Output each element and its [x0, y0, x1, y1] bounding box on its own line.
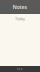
staticText: Notes — [12, 3, 27, 11]
staticText: ••• — [17, 66, 23, 72]
staticText: Today — [15, 16, 25, 21]
